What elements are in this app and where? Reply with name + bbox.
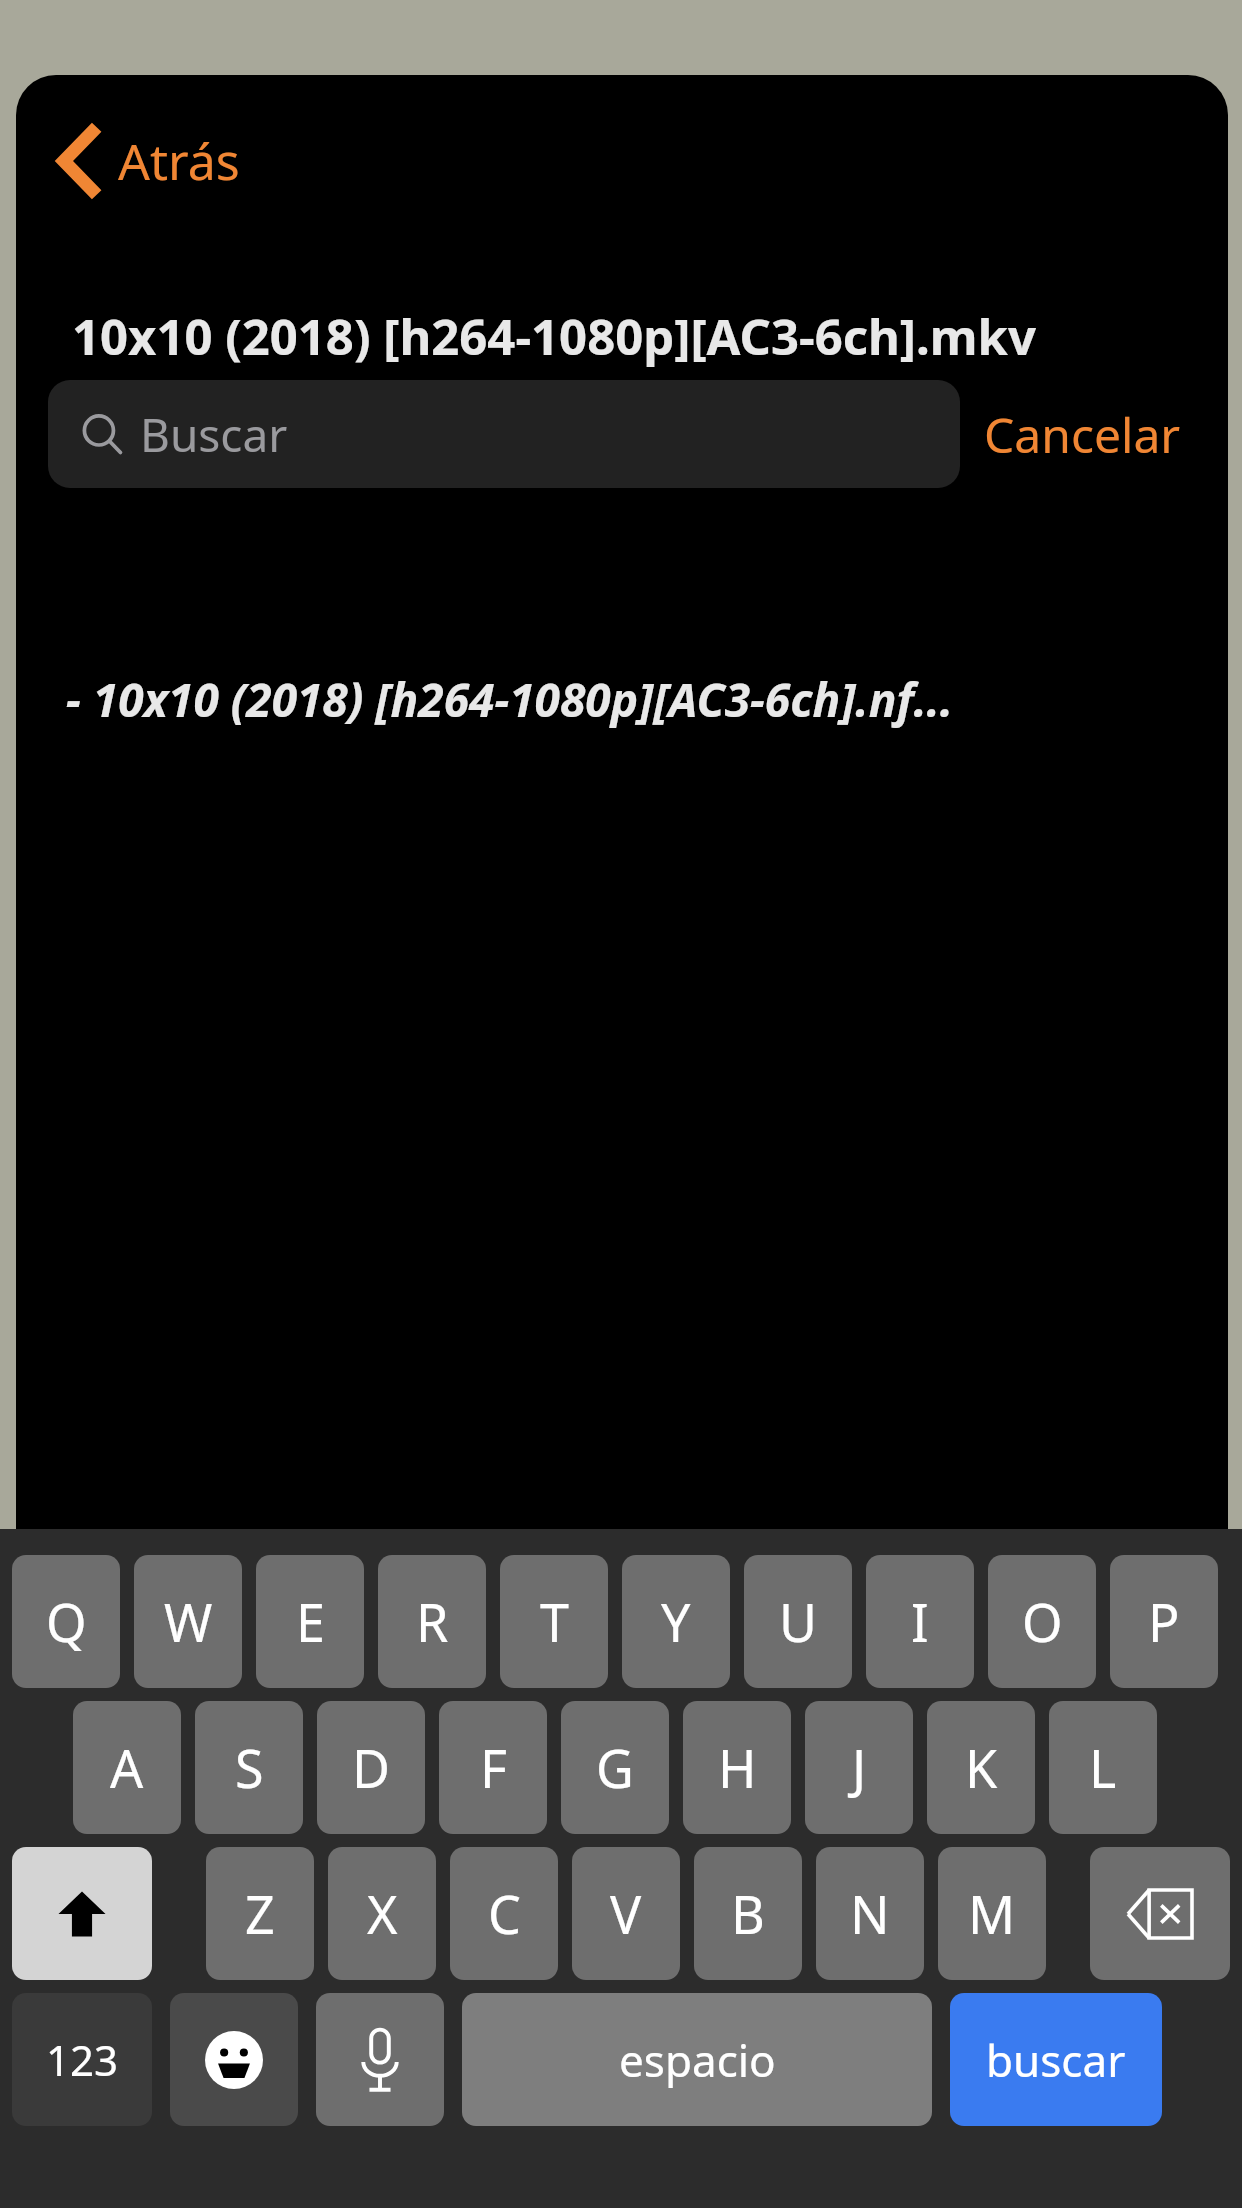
staticText: M (968, 1878, 1016, 1949)
button[interactable]: espacio (462, 1993, 932, 2126)
button[interactable]: Z (206, 1847, 314, 1980)
staticText: F (480, 1732, 507, 1803)
button[interactable]: L (1049, 1701, 1157, 1834)
button[interactable]: A (73, 1701, 181, 1834)
staticText: C (488, 1878, 521, 1949)
staticText: E (296, 1586, 325, 1657)
button[interactable]: Atrás (50, 119, 246, 203)
button[interactable]: - 10x10 (2018) [h264-1080p][AC3-6ch].nf.… (16, 645, 1228, 753)
staticText: U (779, 1586, 818, 1657)
staticText: Q (46, 1586, 87, 1657)
button[interactable]: F (439, 1701, 547, 1834)
button[interactable]: M (938, 1847, 1046, 1980)
staticText: 10x10 (2018) [h264-1080p][AC3-6ch].mkv (72, 303, 1182, 370)
button[interactable]: buscar (950, 1993, 1162, 2126)
button[interactable]: Buscar (48, 380, 960, 488)
button[interactable]: T (500, 1555, 608, 1688)
button[interactable]: N (816, 1847, 924, 1980)
staticText: V (610, 1878, 642, 1949)
button[interactable]: Q (12, 1555, 120, 1688)
button[interactable]: B (694, 1847, 802, 1980)
button[interactable]: J (805, 1701, 913, 1834)
staticText: espacio (619, 2030, 776, 2090)
button[interactable]: Dictate (316, 1993, 444, 2126)
staticText: L (1089, 1732, 1117, 1803)
staticText: J (852, 1732, 867, 1803)
button[interactable]: K (927, 1701, 1035, 1834)
button[interactable]: Cancelar (984, 380, 1181, 488)
button[interactable]: I (866, 1555, 974, 1688)
staticText: I (911, 1586, 929, 1657)
staticText: Z (245, 1878, 275, 1949)
staticText: W (164, 1586, 213, 1657)
button[interactable]: G (561, 1701, 669, 1834)
staticText: O (1022, 1586, 1063, 1657)
button[interactable]: H (683, 1701, 791, 1834)
staticText: A (110, 1732, 144, 1803)
staticText: 123 (46, 2031, 119, 2088)
button[interactable]: X (328, 1847, 436, 1980)
button[interactable]: Emoji (170, 1993, 298, 2126)
staticText: S (235, 1732, 264, 1803)
button[interactable]: Backspace (1090, 1847, 1230, 1980)
button[interactable]: 123 (12, 1993, 152, 2126)
button[interactable]: S (195, 1701, 303, 1834)
staticText: H (718, 1732, 757, 1803)
button[interactable]: R (378, 1555, 486, 1688)
button[interactable]: Shift (12, 1847, 152, 1980)
staticText: Cancelar (984, 402, 1181, 467)
staticText: G (596, 1732, 634, 1803)
button[interactable]: W (134, 1555, 242, 1688)
button[interactable]: U (744, 1555, 852, 1688)
staticText: D (352, 1732, 390, 1803)
staticText: Y (661, 1586, 691, 1657)
staticText: B (731, 1878, 765, 1949)
staticText: P (1148, 1586, 1180, 1657)
button[interactable]: D (317, 1701, 425, 1834)
staticText: Atrás (118, 127, 240, 195)
staticText: R (416, 1586, 449, 1657)
button[interactable]: Y (622, 1555, 730, 1688)
staticText: T (540, 1586, 569, 1657)
button[interactable]: E (256, 1555, 364, 1688)
staticText: buscar (986, 2030, 1126, 2090)
staticText: Buscar (140, 403, 288, 466)
button[interactable]: O (988, 1555, 1096, 1688)
staticText: - 10x10 (2018) [h264-1080p][AC3-6ch].nf.… (66, 668, 954, 731)
staticText: K (965, 1732, 998, 1803)
staticText: N (850, 1878, 890, 1949)
button[interactable]: C (450, 1847, 558, 1980)
staticText: X (367, 1878, 398, 1949)
button[interactable]: V (572, 1847, 680, 1980)
button[interactable]: P (1110, 1555, 1218, 1688)
